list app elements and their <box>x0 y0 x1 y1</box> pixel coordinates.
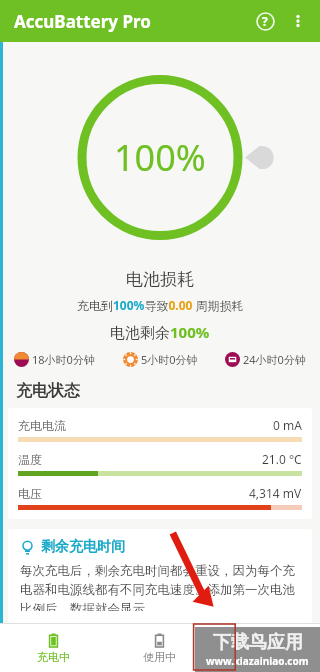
staticText: 电池损耗 <box>126 269 194 290</box>
staticText: 下载鸟应用 <box>213 631 303 654</box>
staticText: ? <box>262 13 268 29</box>
staticText: AccuBattery Pro <box>14 10 151 33</box>
staticText: 充电到100%导致0.00 周期损耗 <box>77 297 244 313</box>
staticText: 温度 <box>18 452 42 467</box>
staticText: 充电中 <box>37 650 70 664</box>
button[interactable]: 剩余充电时间 <box>8 529 312 623</box>
button[interactable]: 历史 <box>213 624 320 672</box>
staticText: 24小时0分钟 <box>243 352 306 367</box>
staticText: 历史 <box>256 650 278 664</box>
button[interactable]: Help <box>248 4 282 38</box>
staticText: 5小时0分钟 <box>141 352 198 367</box>
staticText: 使用中 <box>143 650 176 664</box>
staticText: 21.0 °C <box>262 451 302 467</box>
button[interactable]: 充电中 <box>0 624 106 672</box>
staticText: www.xiazainiao.com <box>206 654 309 668</box>
staticText: 0 mA <box>273 417 302 433</box>
staticText: 100% <box>114 133 206 182</box>
button[interactable]: 充电电流 <box>8 408 312 519</box>
staticText: 18小时0分钟 <box>32 352 95 367</box>
staticText: 充电状态 <box>16 381 80 401</box>
staticText: 电池剩余100% <box>110 322 210 342</box>
staticText: 4,314 mV <box>249 485 302 501</box>
staticText: 剩余充电时间 <box>41 538 125 556</box>
staticText: 充电电流 <box>18 418 66 433</box>
button[interactable]: 使用中 <box>106 624 213 672</box>
button[interactable]: More options <box>282 5 314 37</box>
staticText: 电压 <box>18 486 42 501</box>
staticText: 每次充电后，剩余充电时间都会重设，因为每个充电器和电源线都有不同充电速度。添加第… <box>20 563 300 611</box>
